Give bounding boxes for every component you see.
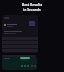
button[interactable]: [2, 15, 38, 53]
staticText: Best Results in Seconds: [0, 2, 64, 12]
button[interactable]: [2, 57, 37, 70]
